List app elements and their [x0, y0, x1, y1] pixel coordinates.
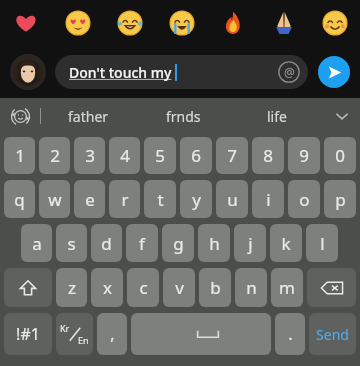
- staticText: e: [85, 188, 95, 211]
- button[interactable]: Smiling: [309, 0, 360, 45]
- staticText: l: [320, 232, 325, 255]
- staticText: @: [284, 64, 295, 80]
- button[interactable]: 4: [109, 137, 140, 174]
- button[interactable]: d: [91, 224, 122, 262]
- button[interactable]: life: [230, 98, 324, 134]
- button[interactable]: Don't touch my: [55, 55, 308, 89]
- button[interactable]: Send: [318, 56, 350, 88]
- button[interactable]: 0: [324, 137, 356, 174]
- staticText: 9: [299, 144, 309, 167]
- button[interactable]: m: [271, 268, 303, 307]
- staticText: 5: [155, 144, 165, 167]
- button[interactable]: Space: [131, 313, 271, 355]
- button[interactable]: b: [199, 268, 231, 307]
- staticText: j: [248, 232, 253, 255]
- staticText: f: [139, 232, 145, 255]
- staticText: Don't touch my: [69, 63, 172, 82]
- staticText: y: [192, 188, 201, 211]
- staticText: u: [227, 188, 238, 211]
- button[interactable]: Laughing: [104, 0, 156, 45]
- button[interactable]: 9: [288, 137, 320, 174]
- button[interactable]: 3: [74, 137, 105, 174]
- button[interactable]: c: [127, 268, 159, 307]
- staticText: father: [68, 107, 109, 126]
- staticText: En: [78, 334, 89, 346]
- button[interactable]: 8: [252, 137, 284, 174]
- staticText: c: [139, 276, 148, 299]
- staticText: z: [68, 276, 76, 299]
- staticText: frnds: [166, 107, 201, 126]
- button[interactable]: frnds: [136, 98, 230, 134]
- button[interactable]: Fire: [207, 0, 258, 45]
- button[interactable]: y: [180, 180, 212, 218]
- staticText: p: [335, 188, 346, 211]
- button[interactable]: h: [198, 224, 230, 262]
- staticText: n: [246, 276, 257, 299]
- button[interactable]: Praying hands: [258, 0, 309, 45]
- staticText: r: [121, 188, 129, 211]
- button[interactable]: ,: [97, 313, 127, 355]
- button[interactable]: a: [21, 224, 52, 262]
- button[interactable]: s: [56, 224, 87, 262]
- button[interactable]: t: [144, 180, 176, 218]
- button[interactable]: !#1: [4, 313, 52, 355]
- staticText: i: [266, 188, 271, 211]
- staticText: Send: [316, 325, 349, 344]
- button[interactable]: father: [41, 98, 136, 134]
- button[interactable]: n: [235, 268, 267, 307]
- button[interactable]: e: [74, 180, 105, 218]
- button[interactable]: w: [39, 180, 70, 218]
- button[interactable]: 1: [4, 137, 35, 174]
- button[interactable]: Profile avatar: [10, 54, 46, 90]
- button[interactable]: v: [163, 268, 195, 307]
- staticText: k: [281, 232, 291, 255]
- button[interactable]: .: [275, 313, 305, 355]
- button[interactable]: 7: [216, 137, 248, 174]
- button[interactable]: r: [109, 180, 140, 218]
- button[interactable]: g: [162, 224, 194, 262]
- button[interactable]: u: [216, 180, 248, 218]
- button[interactable]: Send: [309, 313, 356, 355]
- staticText: 4: [120, 144, 130, 167]
- button[interactable]: z: [56, 268, 87, 307]
- button[interactable]: x: [91, 268, 123, 307]
- staticText: life: [267, 107, 287, 126]
- button[interactable]: Heart: [0, 0, 52, 45]
- staticText: 0: [335, 144, 345, 167]
- staticText: Kr: [60, 322, 70, 334]
- staticText: .: [288, 323, 293, 345]
- staticText: g: [173, 232, 184, 255]
- button[interactable]: 2: [39, 137, 70, 174]
- staticText: 7: [227, 144, 237, 167]
- button[interactable]: 6: [180, 137, 212, 174]
- staticText: 6: [191, 144, 201, 167]
- button[interactable]: f: [126, 224, 158, 262]
- button[interactable]: 5: [144, 137, 176, 174]
- staticText: a: [32, 232, 42, 255]
- button[interactable]: Crying: [156, 0, 207, 45]
- button[interactable]: i: [252, 180, 284, 218]
- button[interactable]: Backspace: [307, 268, 356, 307]
- button[interactable]: p: [324, 180, 356, 218]
- button[interactable]: Shift: [4, 268, 52, 307]
- button[interactable]: Emoji suggestions: [0, 98, 40, 134]
- staticText: b: [210, 276, 221, 299]
- staticText: q: [14, 188, 25, 211]
- button[interactable]: Heart eyes: [52, 0, 104, 45]
- button[interactable]: o: [288, 180, 320, 218]
- button[interactable]: Expand suggestions: [324, 98, 360, 134]
- button[interactable]: q: [4, 180, 35, 218]
- staticText: 2: [50, 144, 60, 167]
- staticText: v: [175, 276, 184, 299]
- staticText: ,: [110, 323, 115, 345]
- staticText: o: [299, 188, 310, 211]
- button[interactable]: Language: [56, 313, 93, 355]
- button[interactable]: j: [234, 224, 266, 262]
- staticText: 8: [263, 144, 273, 167]
- staticText: x: [103, 276, 112, 299]
- staticText: w: [48, 188, 62, 211]
- button[interactable]: k: [270, 224, 302, 262]
- button[interactable]: Mention: [278, 61, 300, 83]
- button[interactable]: l: [306, 224, 338, 262]
- staticText: t: [157, 188, 164, 211]
